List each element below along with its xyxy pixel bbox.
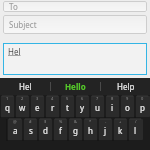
button[interactable]: To: [3, 1, 147, 12]
staticText: o: [125, 102, 130, 113]
button[interactable]: 6: [75, 95, 90, 118]
staticText: 4: [51, 96, 54, 101]
staticText: e: [35, 102, 40, 113]
button[interactable]: 8: [105, 95, 120, 118]
staticText: k: [118, 125, 123, 136]
staticText: #: [29, 119, 32, 124]
button[interactable]: -: [98, 118, 113, 141]
button[interactable]: Hello: [51, 78, 100, 95]
staticText: Hel: [19, 81, 32, 92]
staticText: p: [140, 102, 145, 113]
button[interactable]: 1: [0, 95, 15, 118]
button[interactable]: Help: [101, 78, 150, 95]
staticText: *: [89, 119, 92, 124]
staticText: Help: [117, 81, 135, 92]
button[interactable]: Hel: [0, 78, 50, 95]
button[interactable]: %: [53, 118, 68, 141]
button[interactable]: Hel: [3, 43, 147, 75]
staticText: 9: [126, 96, 129, 101]
staticText: h: [88, 125, 93, 136]
button[interactable]: *: [83, 118, 98, 141]
staticText: -: [105, 119, 107, 124]
staticText: &: [74, 119, 77, 124]
staticText: j: [104, 125, 107, 136]
staticText: t: [66, 102, 69, 113]
staticText: /: [135, 119, 137, 124]
staticText: +: [119, 119, 122, 124]
staticText: d: [43, 125, 48, 136]
staticText: 5: [66, 96, 69, 101]
staticText: 2: [21, 96, 24, 101]
staticText: g: [73, 125, 78, 136]
button[interactable]: 2: [15, 95, 30, 118]
button[interactable]: @: [7, 118, 23, 141]
staticText: 0: [141, 96, 144, 101]
button[interactable]: #: [23, 118, 38, 141]
button[interactable]: &: [68, 118, 83, 141]
button[interactable]: $: [38, 118, 53, 141]
staticText: u: [95, 102, 100, 113]
staticText: 1: [6, 96, 9, 101]
staticText: $: [44, 119, 47, 124]
button[interactable]: 3: [30, 95, 45, 118]
staticText: 7: [96, 96, 99, 101]
button[interactable]: +: [113, 118, 128, 141]
staticText: l: [134, 125, 137, 136]
staticText: 3: [36, 96, 39, 101]
button[interactable]: 9: [120, 95, 135, 118]
button[interactable]: 4: [45, 95, 60, 118]
staticText: i: [111, 102, 114, 113]
staticText: To: [9, 1, 18, 12]
staticText: %: [59, 119, 63, 124]
staticText: @: [13, 119, 17, 124]
staticText: 8: [111, 96, 114, 101]
staticText: Subject: [9, 19, 37, 30]
button[interactable]: 7: [90, 95, 105, 118]
button[interactable]: 0: [135, 95, 150, 118]
staticText: s: [29, 125, 33, 136]
staticText: y: [80, 102, 85, 113]
staticText: q: [5, 102, 10, 113]
staticText: f: [59, 125, 62, 136]
staticText: r: [51, 102, 55, 113]
staticText: a: [13, 125, 18, 136]
staticText: Hello: [65, 81, 86, 92]
staticText: Hel: [8, 46, 21, 57]
button[interactable]: /: [128, 118, 143, 141]
button[interactable]: 5: [60, 95, 75, 118]
button[interactable]: Subject: [3, 15, 147, 34]
staticText: 6: [81, 96, 84, 101]
staticText: w: [19, 102, 26, 113]
